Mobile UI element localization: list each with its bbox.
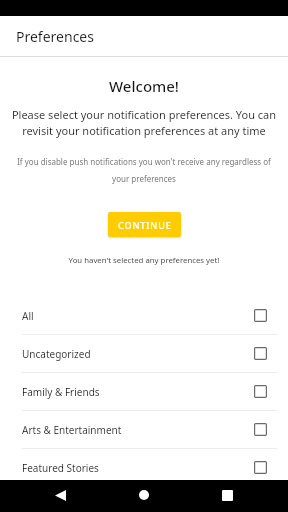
button[interactable]: Uncategorized <box>0 335 288 372</box>
staticText: Uncategorized <box>22 347 91 361</box>
staticText: All <box>22 309 34 323</box>
button[interactable]: Arts & Entertainment <box>0 411 288 448</box>
button[interactable]: CONTINUE <box>108 212 181 237</box>
staticText: You haven't selected any preferences yet… <box>0 255 288 266</box>
staticText: Arts & Entertainment <box>22 423 122 437</box>
staticText: Family & Friends <box>22 385 100 399</box>
staticText: If you disable push notifications you wo… <box>12 156 276 184</box>
staticText: Preferences <box>16 27 94 46</box>
staticText: Welcome! <box>0 76 288 96</box>
staticText: Featured Stories <box>22 461 99 475</box>
button[interactable]: Featured Stories <box>0 449 288 486</box>
button[interactable]: Home <box>128 480 160 510</box>
button[interactable]: Recent apps <box>211 480 243 510</box>
button[interactable]: All <box>0 297 288 334</box>
button[interactable]: Back <box>44 480 76 510</box>
staticText: Please select your notification preferen… <box>6 107 282 139</box>
staticText: CONTINUE <box>118 219 172 231</box>
button[interactable]: Family & Friends <box>0 373 288 410</box>
